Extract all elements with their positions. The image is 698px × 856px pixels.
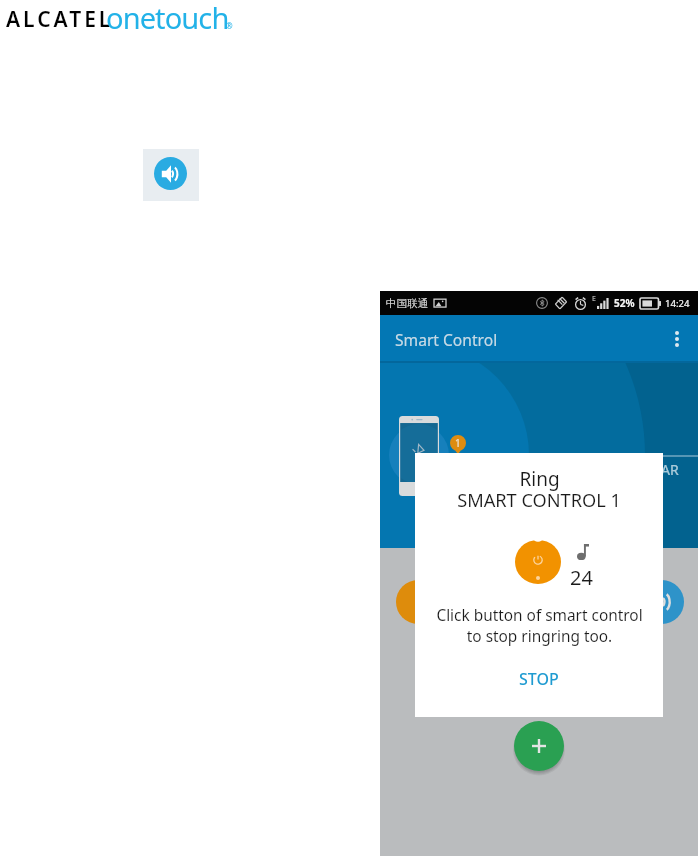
- staticText: 1: [455, 436, 461, 450]
- staticText: Smart Control: [395, 329, 498, 350]
- staticText: onetouch: [106, 0, 229, 37]
- button[interactable]: STOP: [503, 663, 575, 695]
- staticText: SMART CONTROL 1: [457, 488, 621, 513]
- staticText: Click button of smart control to stop ri…: [436, 605, 643, 647]
- button[interactable]: Ring: [154, 157, 187, 190]
- staticText: E: [592, 294, 596, 304]
- button[interactable]: Smart control 1: [396, 580, 440, 624]
- staticText: ®: [226, 20, 233, 31]
- staticText: STOP: [519, 668, 559, 690]
- staticText: 24: [570, 564, 593, 591]
- staticText: FAR: [654, 460, 679, 479]
- staticText: Ring: [519, 466, 560, 492]
- staticText: ALCATEL: [6, 5, 114, 34]
- staticText: 52%: [614, 296, 635, 310]
- staticText: 中国联通: [386, 297, 429, 310]
- staticText: 14:24: [665, 297, 690, 310]
- button[interactable]: Ring device: [640, 580, 684, 624]
- button[interactable]: Add smart control: [514, 721, 564, 771]
- button[interactable]: More options: [662, 324, 692, 354]
